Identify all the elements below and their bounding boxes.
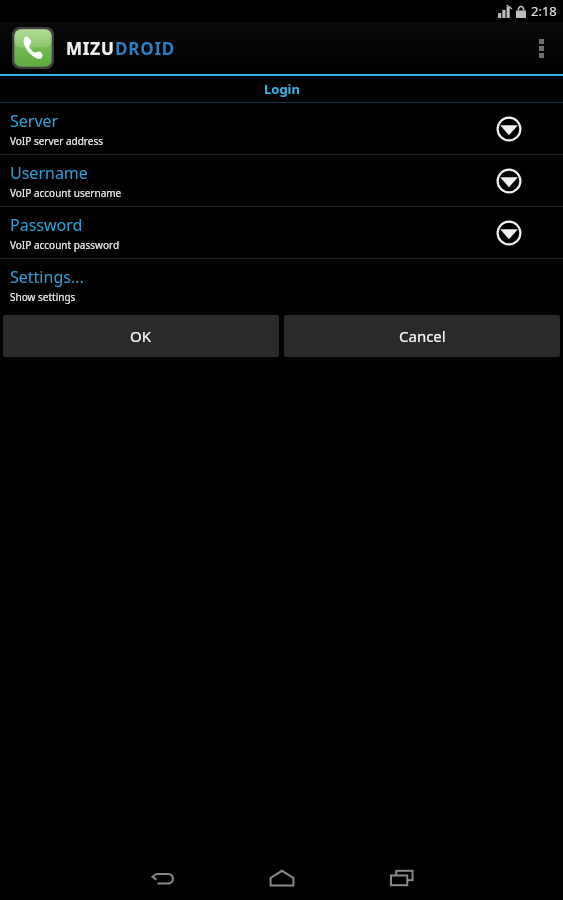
staticText: Login (264, 80, 300, 98)
staticText: Username (10, 162, 88, 184)
button[interactable]: Server (0, 103, 563, 154)
other: Expand Server (494, 114, 524, 144)
staticText: Server (10, 110, 59, 132)
button[interactable]: Settings... (0, 259, 563, 310)
button[interactable]: Home (243, 855, 321, 900)
button[interactable]: Back (123, 855, 201, 900)
staticText: Show settings (10, 290, 76, 304)
button[interactable]: Password (0, 207, 563, 258)
staticText: 2:18 (531, 2, 557, 20)
staticText: MIZU (66, 37, 115, 60)
staticText: VoIP account password (10, 238, 120, 252)
button[interactable]: Login (0, 76, 563, 102)
staticText: VoIP account username (10, 186, 122, 200)
button[interactable]: Cancel (284, 315, 560, 357)
button[interactable]: OK (3, 315, 279, 357)
button[interactable]: Username (0, 155, 563, 206)
staticText: OK (130, 326, 152, 346)
staticText: DROID (115, 37, 176, 60)
button[interactable]: Recent apps (363, 855, 441, 900)
staticText: Cancel (399, 326, 446, 346)
staticText: VoIP server address (10, 134, 103, 148)
staticText: Settings... (10, 266, 84, 288)
other: Expand Password (494, 218, 524, 248)
staticText: Password (10, 214, 83, 236)
button[interactable]: More options (519, 22, 563, 74)
other: Expand Username (494, 166, 524, 196)
